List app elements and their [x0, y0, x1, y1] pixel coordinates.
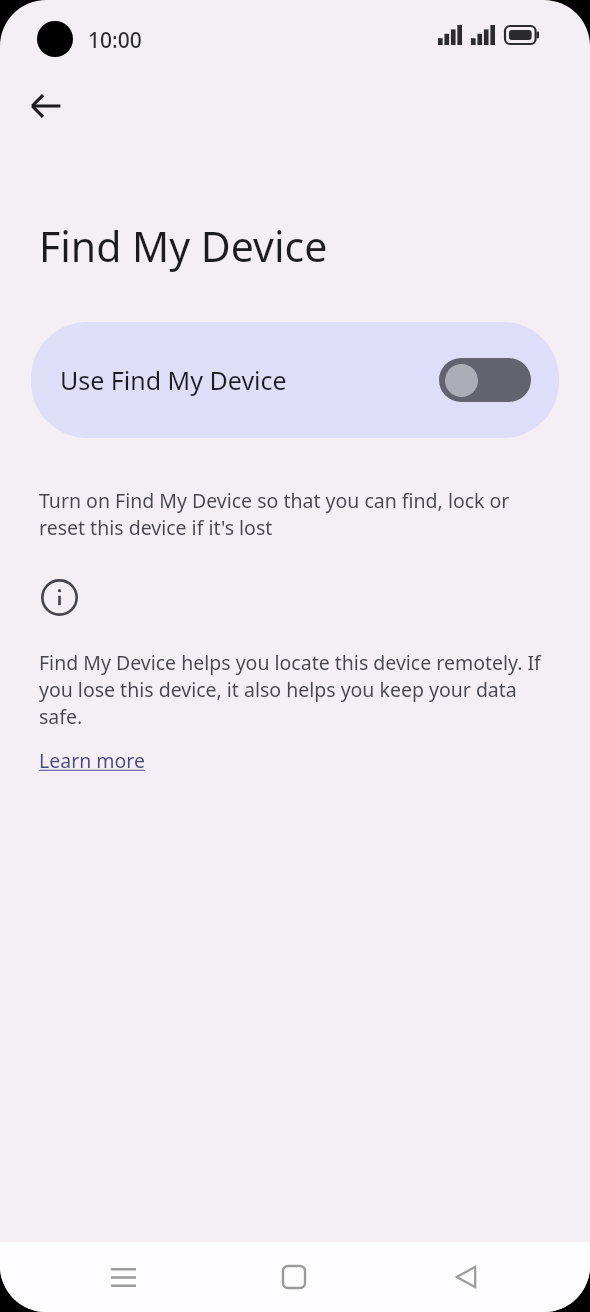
button[interactable]: Learn more: [39, 747, 146, 774]
other: Information: [39, 577, 79, 617]
staticText: 10:00: [88, 26, 142, 55]
button[interactable]: Home: [246, 1242, 342, 1312]
staticText: Turn on Find My Device so that you can f…: [39, 487, 560, 541]
button[interactable]: Back: [18, 78, 74, 134]
staticText: Learn more: [39, 747, 146, 774]
staticText: Use Find My Device: [60, 363, 439, 397]
staticText: Find My Device: [39, 218, 328, 274]
button[interactable]: Use Find My Device toggle: [439, 358, 531, 402]
button[interactable]: Use Find My Device: [31, 322, 559, 438]
button[interactable]: Recent apps: [75, 1242, 171, 1312]
button[interactable]: Back: [418, 1242, 514, 1312]
staticText: Find My Device helps you locate this dev…: [39, 649, 550, 730]
